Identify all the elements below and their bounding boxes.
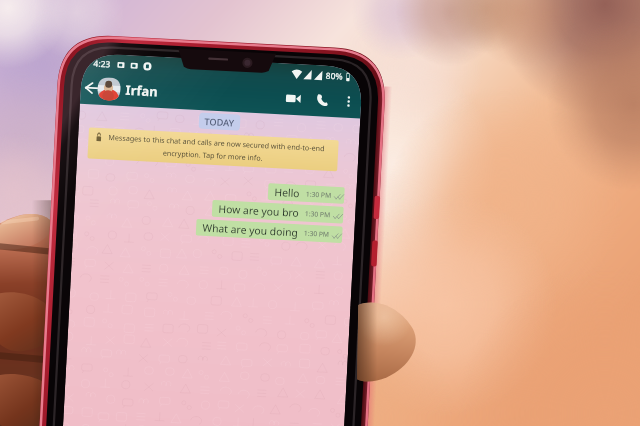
button[interactable]: WhatsApp chat with Irfan	[0, 0, 640, 426]
